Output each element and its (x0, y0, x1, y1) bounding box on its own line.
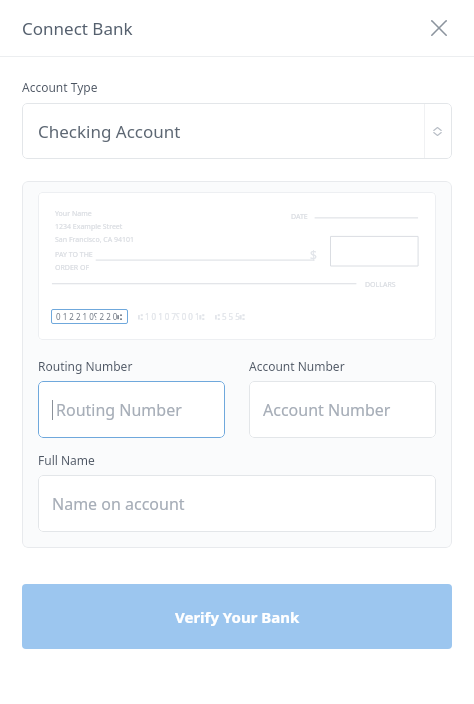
staticText: Account Number (249, 358, 345, 374)
button[interactable]: Name on account (38, 475, 436, 532)
staticText: 1234 Example Street (55, 222, 123, 232)
staticText: ORDER OF (55, 263, 90, 273)
staticText: ⑆ 1 0 1 0 7⸮ 0 0 1⑆ (138, 311, 205, 322)
staticText: ⑆ 5 5 5⑆ (215, 311, 245, 322)
button[interactable]: Checking Account (22, 103, 452, 159)
staticText: Routing Number (38, 358, 133, 374)
staticText: Your Name (55, 209, 92, 219)
staticText: Checking Account (38, 120, 181, 143)
staticText: Verify Your Bank (175, 607, 300, 627)
staticText: 0 1 2 2 1 0⸮ 2 2 0⑆ (56, 311, 123, 322)
button[interactable]: Account Number (249, 381, 436, 438)
button[interactable]: Close (422, 11, 456, 45)
staticText: Full Name (38, 452, 95, 468)
staticText: Account Number (263, 399, 391, 421)
button[interactable]: Verify Your Bank (22, 584, 452, 649)
staticText: PAY TO THE (55, 250, 93, 260)
staticText: $ (310, 247, 317, 263)
button[interactable]: Routing Number (38, 381, 225, 438)
staticText: Routing Number (56, 399, 182, 421)
staticText: DATE (291, 212, 308, 222)
staticText: Connect Bank (22, 17, 133, 40)
staticText: Name on account (52, 493, 185, 515)
staticText: Account Type (22, 79, 98, 95)
staticText: DOLLARS (365, 280, 396, 290)
staticText: San Francisco, CA 94101 (55, 235, 135, 245)
